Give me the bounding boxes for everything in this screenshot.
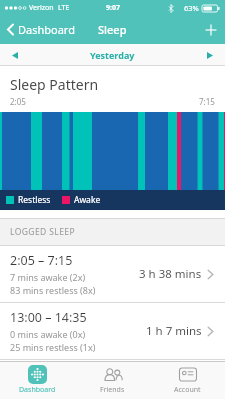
staticText: 83 mins restless (8x) [10, 284, 96, 296]
button[interactable]: 13:00 – 14:35 [0, 303, 225, 359]
button[interactable]: 2:05 – 7:15 [0, 246, 225, 302]
staticText: LOGGED SLEEP [10, 226, 75, 238]
staticText: 9:07 [106, 3, 120, 13]
staticText: 13:00 – 14:35 [10, 309, 87, 326]
staticText: Awake [74, 194, 101, 206]
staticText: 3 h 38 mins [139, 266, 202, 282]
staticText: Restless [18, 194, 51, 206]
staticText: Verizon [29, 3, 54, 13]
staticText: Account [174, 385, 201, 395]
staticText: 2:05 – 7:15 [10, 252, 73, 269]
staticText: Sleep Pattern [10, 75, 99, 94]
staticText: 2:05 [10, 96, 26, 107]
staticText: 25 mins restless (1x) [10, 341, 96, 353]
staticText: Friends [100, 385, 125, 395]
staticText: 1 h 7 mins [146, 323, 202, 339]
staticText: LTE [58, 3, 70, 13]
staticText: Dashboard [18, 22, 75, 37]
button[interactable]: Friends [75, 362, 150, 399]
staticText: 7 mins awake (2x) [10, 271, 86, 283]
button[interactable] [205, 24, 217, 36]
button[interactable]: Dashboard [6, 22, 75, 37]
staticText: 7:15 [199, 96, 215, 107]
staticText: Yesterday [90, 49, 135, 61]
button[interactable]: Account [150, 362, 225, 399]
button[interactable]: Dashboard [0, 362, 75, 399]
staticText: Dashboard [19, 385, 56, 395]
button[interactable]: Yesterday [0, 44, 225, 66]
staticText: 63% [184, 3, 199, 13]
staticText: Sleep [98, 22, 127, 37]
staticText: 0 mins awake (0x) [10, 328, 86, 340]
